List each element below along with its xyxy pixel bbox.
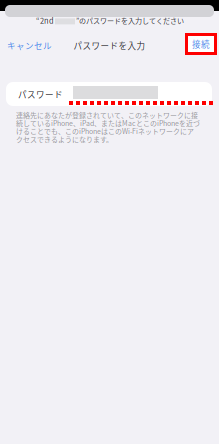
button[interactable]: 接続 [0, 39, 32, 61]
staticText: パスワードを入力 [73, 39, 145, 52]
staticText: “2nd [36, 15, 54, 26]
staticText: ”のパスワードを入力してください [76, 15, 184, 25]
button[interactable]: キャンセル [0, 39, 50, 52]
staticText: 連絡先にあなたが登録されていて、このネットワークに接続しているiPhone、iP… [16, 111, 200, 143]
staticText: キャンセル [7, 39, 52, 52]
staticText: 接続 [192, 38, 210, 50]
staticText: パスワード [18, 88, 63, 100]
